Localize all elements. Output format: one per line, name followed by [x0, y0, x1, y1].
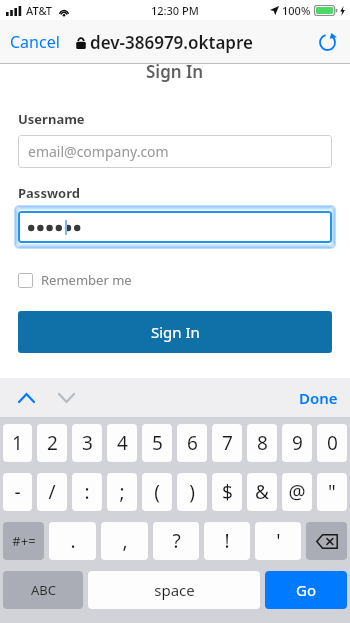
button[interactable]: " [317, 473, 347, 511]
button[interactable]: 2 [37, 424, 67, 462]
staticText: , [122, 528, 128, 554]
staticText: 12:30 PM [151, 3, 199, 18]
button[interactable]: 8 [247, 424, 277, 462]
staticText: 8 [257, 430, 268, 456]
staticText: 4 [117, 430, 128, 456]
button[interactable]: 1 [3, 424, 32, 462]
button[interactable]: 6 [177, 424, 207, 462]
staticText: email@company.com [28, 142, 169, 161]
button[interactable]: Sign In [18, 311, 332, 353]
button[interactable]: 9 [282, 424, 312, 462]
staticText: Done [299, 388, 338, 408]
staticText: : [84, 479, 90, 505]
button[interactable]: 0 [317, 424, 347, 462]
staticText: 7 [222, 430, 233, 456]
staticText: 0 [327, 430, 338, 456]
button[interactable]: Done [287, 380, 350, 416]
button[interactable]: Go [265, 571, 347, 609]
button[interactable]: Previous field [10, 382, 42, 414]
button[interactable]: . [49, 522, 96, 560]
button[interactable]: ( [142, 473, 172, 511]
staticText: Sign In [151, 322, 200, 342]
staticText: $ [222, 479, 233, 505]
staticText: - [14, 479, 21, 505]
staticText: AT&T [26, 3, 53, 18]
button[interactable]: space [88, 571, 260, 609]
staticText: / [48, 479, 56, 505]
staticText: & [255, 479, 269, 505]
button[interactable]: Next field [50, 382, 82, 414]
staticText: 3 [82, 430, 93, 456]
button[interactable]: & [247, 473, 277, 511]
button[interactable]: ) [177, 473, 207, 511]
staticText: ( [154, 479, 160, 505]
staticText: ' [276, 528, 281, 554]
button[interactable]: Remember me [18, 267, 132, 293]
staticText: ! [224, 528, 230, 554]
staticText: Password [18, 184, 80, 202]
staticText: space [154, 580, 195, 600]
staticText: 9 [292, 430, 303, 456]
button[interactable]: Reload [312, 27, 342, 57]
button[interactable]: 7 [212, 424, 242, 462]
staticText: ; [119, 479, 125, 505]
button[interactable]: #+= [3, 522, 44, 560]
staticText: dev-386979.oktapre [90, 31, 253, 54]
staticText: . [70, 528, 76, 554]
staticText: 100% [282, 3, 311, 18]
button[interactable]: ' [255, 522, 301, 560]
staticText: ABC [31, 581, 56, 599]
staticText: Cancel [10, 31, 60, 53]
button[interactable]: $ [212, 473, 242, 511]
button[interactable]: 5 [142, 424, 172, 462]
button[interactable]: : [72, 473, 102, 511]
button[interactable]: - [3, 473, 32, 511]
button[interactable]: 3 [72, 424, 102, 462]
staticText: Remember me [41, 271, 132, 289]
staticText: Username [18, 110, 85, 128]
staticText: Go [296, 580, 316, 600]
button[interactable] [18, 211, 332, 243]
staticText: 1 [12, 430, 23, 456]
button[interactable]: ! [204, 522, 250, 560]
staticText: ) [189, 479, 195, 505]
button[interactable]: @ [282, 473, 312, 511]
button[interactable]: / [37, 473, 67, 511]
staticText: #+= [12, 532, 36, 550]
button[interactable]: , [101, 522, 148, 560]
button[interactable]: Cancel [0, 23, 70, 61]
button[interactable]: ; [107, 473, 137, 511]
staticText: ? [172, 528, 181, 554]
staticText: Sign In [146, 60, 204, 83]
button[interactable]: email@company.com [18, 135, 332, 168]
staticText: 6 [187, 430, 198, 456]
button[interactable]: ? [153, 522, 199, 560]
button[interactable]: Backspace [306, 522, 347, 560]
button[interactable]: 4 [107, 424, 137, 462]
button[interactable]: ABC [3, 571, 83, 609]
staticText: @ [288, 479, 306, 505]
staticText: 2 [47, 430, 58, 456]
staticText: 5 [152, 430, 163, 456]
staticText: " [328, 479, 336, 505]
